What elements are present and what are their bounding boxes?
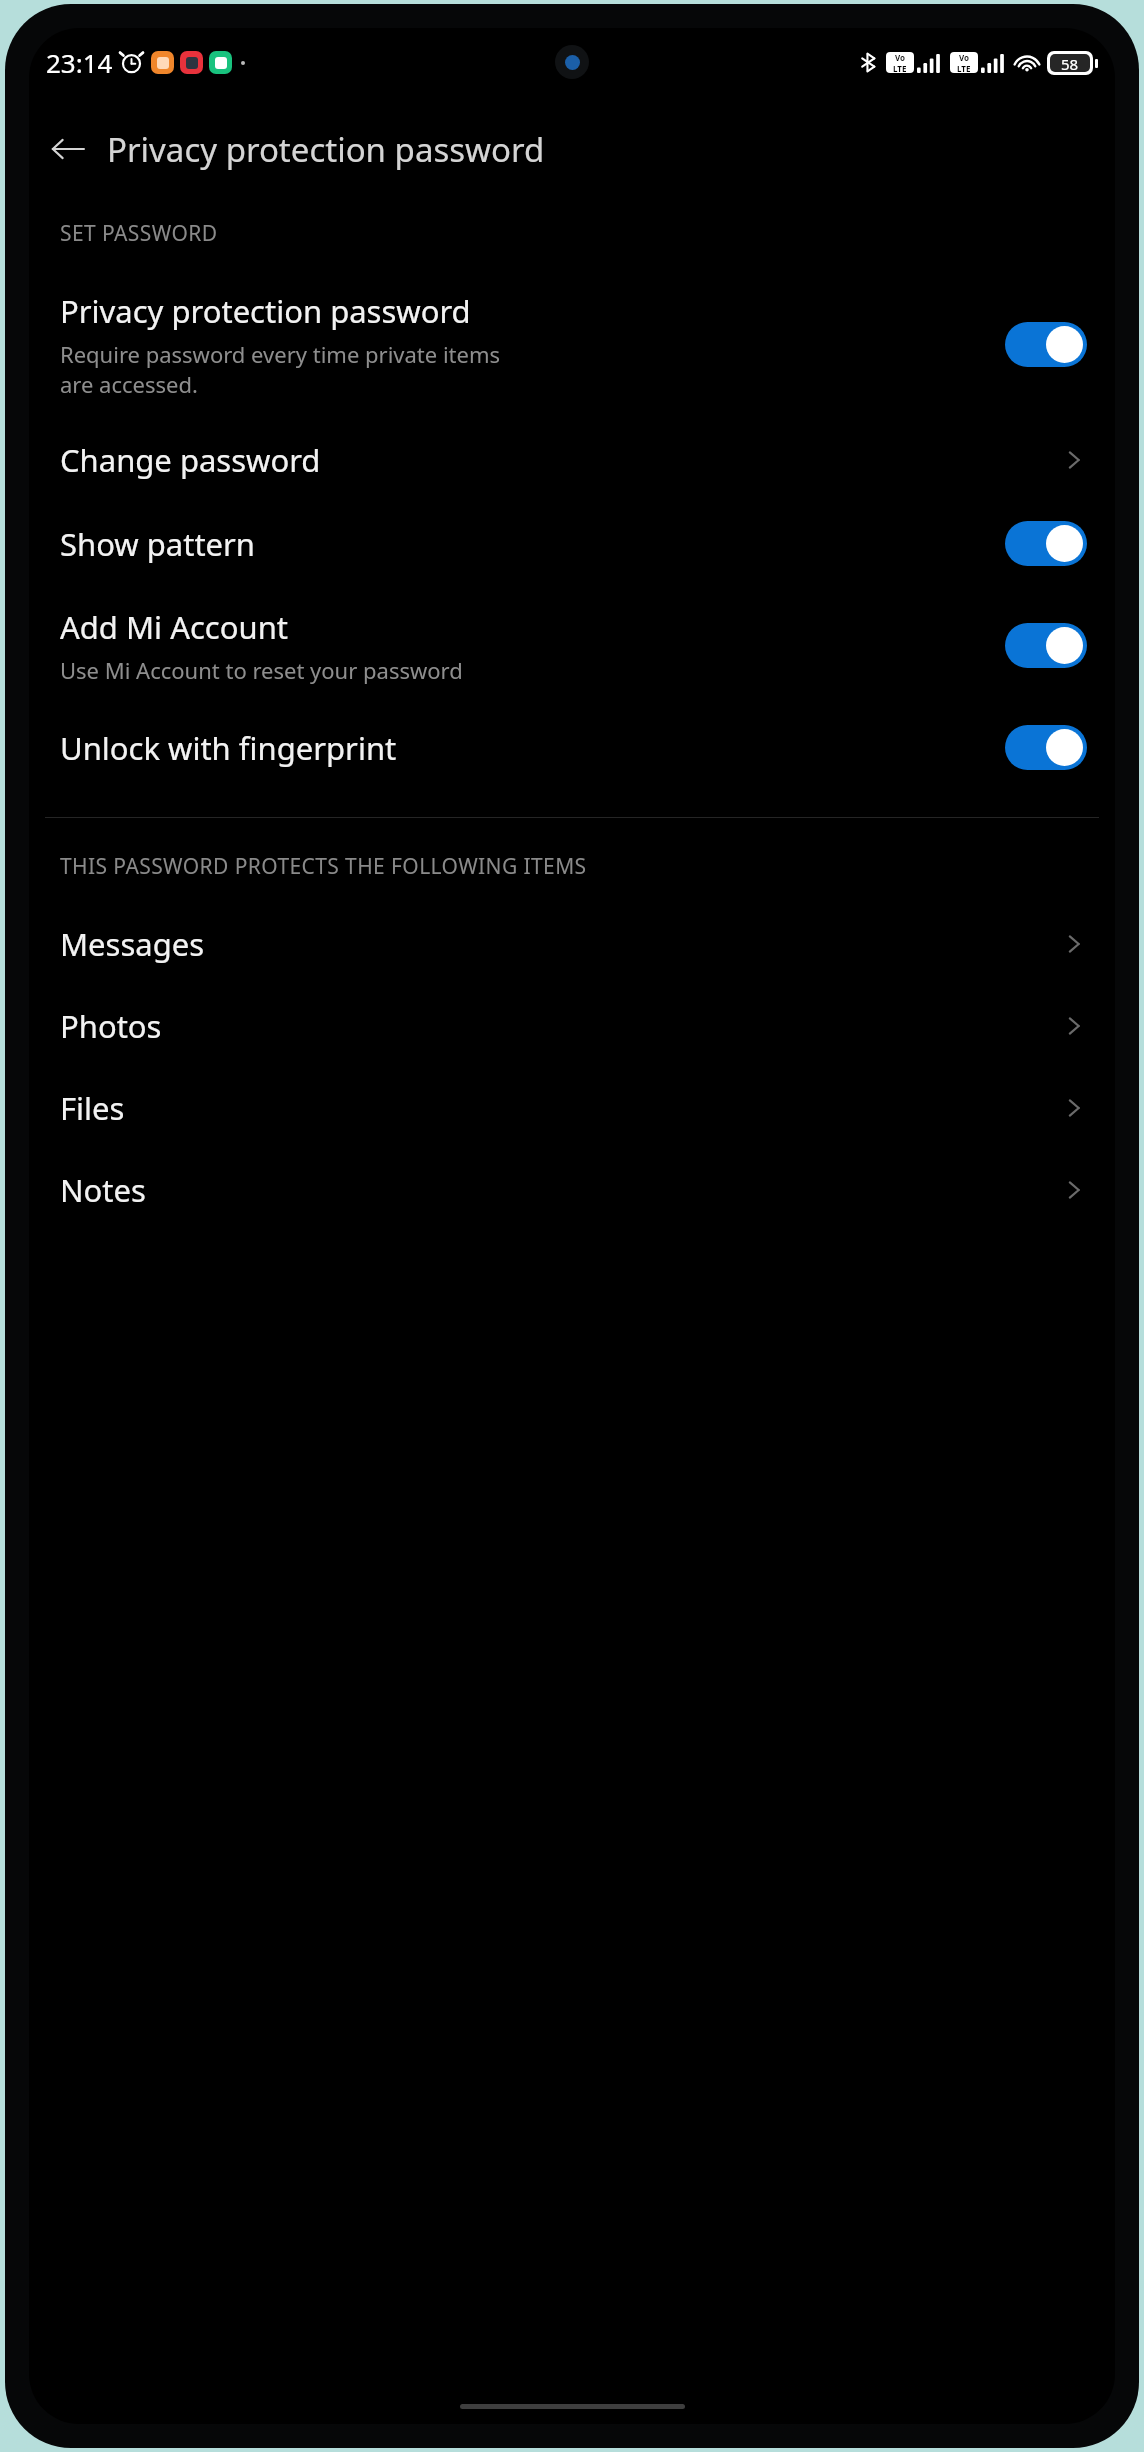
staticText: Show pattern bbox=[60, 523, 256, 565]
staticText: Add Mi Account bbox=[60, 606, 289, 648]
button[interactable]: Unlock with fingerprint bbox=[29, 705, 1115, 790]
staticText: Vo bbox=[959, 52, 970, 63]
button[interactable]: Back bbox=[39, 120, 97, 178]
button[interactable]: Toggle bbox=[1005, 322, 1087, 367]
staticText: LTE bbox=[893, 63, 907, 73]
button[interactable]: Add Mi Account bbox=[29, 586, 1115, 705]
button[interactable]: Toggle bbox=[1005, 725, 1087, 770]
button[interactable]: Show pattern bbox=[29, 501, 1115, 586]
staticText: Unlock with fingerprint bbox=[60, 727, 397, 769]
button[interactable]: Privacy protection password bbox=[29, 270, 1115, 419]
staticText: Privacy protection password bbox=[107, 127, 545, 172]
button[interactable]: Photos bbox=[29, 985, 1115, 1067]
button[interactable]: Toggle bbox=[1005, 521, 1087, 566]
staticText: THIS PASSWORD PROTECTS THE FOLLOWING ITE… bbox=[60, 852, 587, 881]
staticText: Privacy protection password bbox=[60, 290, 471, 332]
staticText: Photos bbox=[60, 1005, 162, 1047]
button[interactable]: Messages bbox=[29, 903, 1115, 985]
staticText: Use Mi Account to reset your password bbox=[60, 655, 463, 685]
staticText: LTE bbox=[957, 63, 971, 73]
button[interactable]: Toggle bbox=[1005, 623, 1087, 668]
staticText: SET PASSWORD bbox=[60, 219, 218, 248]
staticText: Messages bbox=[60, 923, 205, 965]
staticText: Files bbox=[60, 1087, 125, 1129]
staticText: Vo bbox=[895, 52, 906, 63]
staticText: Notes bbox=[60, 1169, 146, 1211]
staticText: Change password bbox=[60, 439, 321, 481]
button[interactable]: Notes bbox=[29, 1149, 1115, 1231]
staticText: Require password every time private item… bbox=[60, 339, 501, 399]
button[interactable]: Files bbox=[29, 1067, 1115, 1149]
button[interactable]: Change password bbox=[29, 419, 1115, 501]
staticText: 58 bbox=[1061, 54, 1079, 72]
staticText: 23:14 bbox=[46, 45, 113, 80]
